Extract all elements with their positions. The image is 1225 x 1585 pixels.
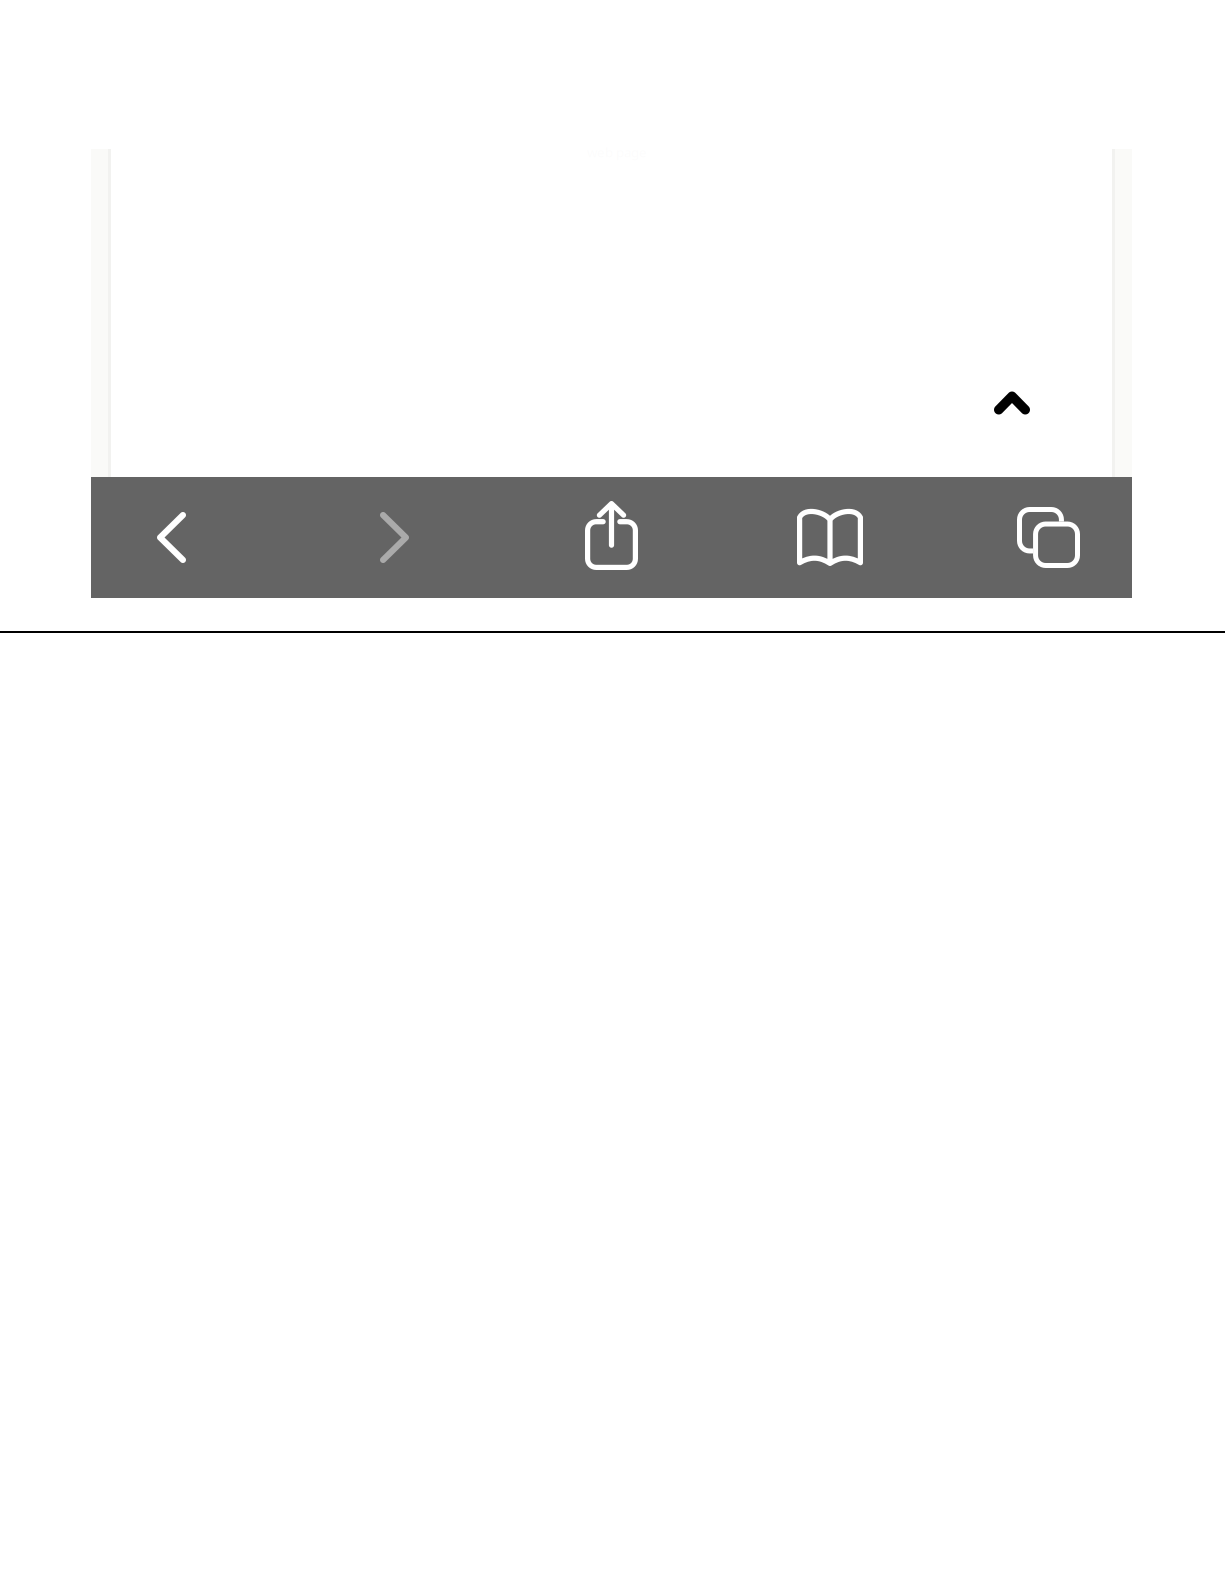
button[interactable]: Share xyxy=(511,477,711,598)
button[interactable]: Tabs xyxy=(932,477,1132,598)
button[interactable]: Scroll to top xyxy=(976,372,1048,434)
button[interactable]: Bookmarks xyxy=(730,477,930,598)
button[interactable]: Forward xyxy=(294,477,494,598)
button[interactable]: Back xyxy=(91,477,291,598)
